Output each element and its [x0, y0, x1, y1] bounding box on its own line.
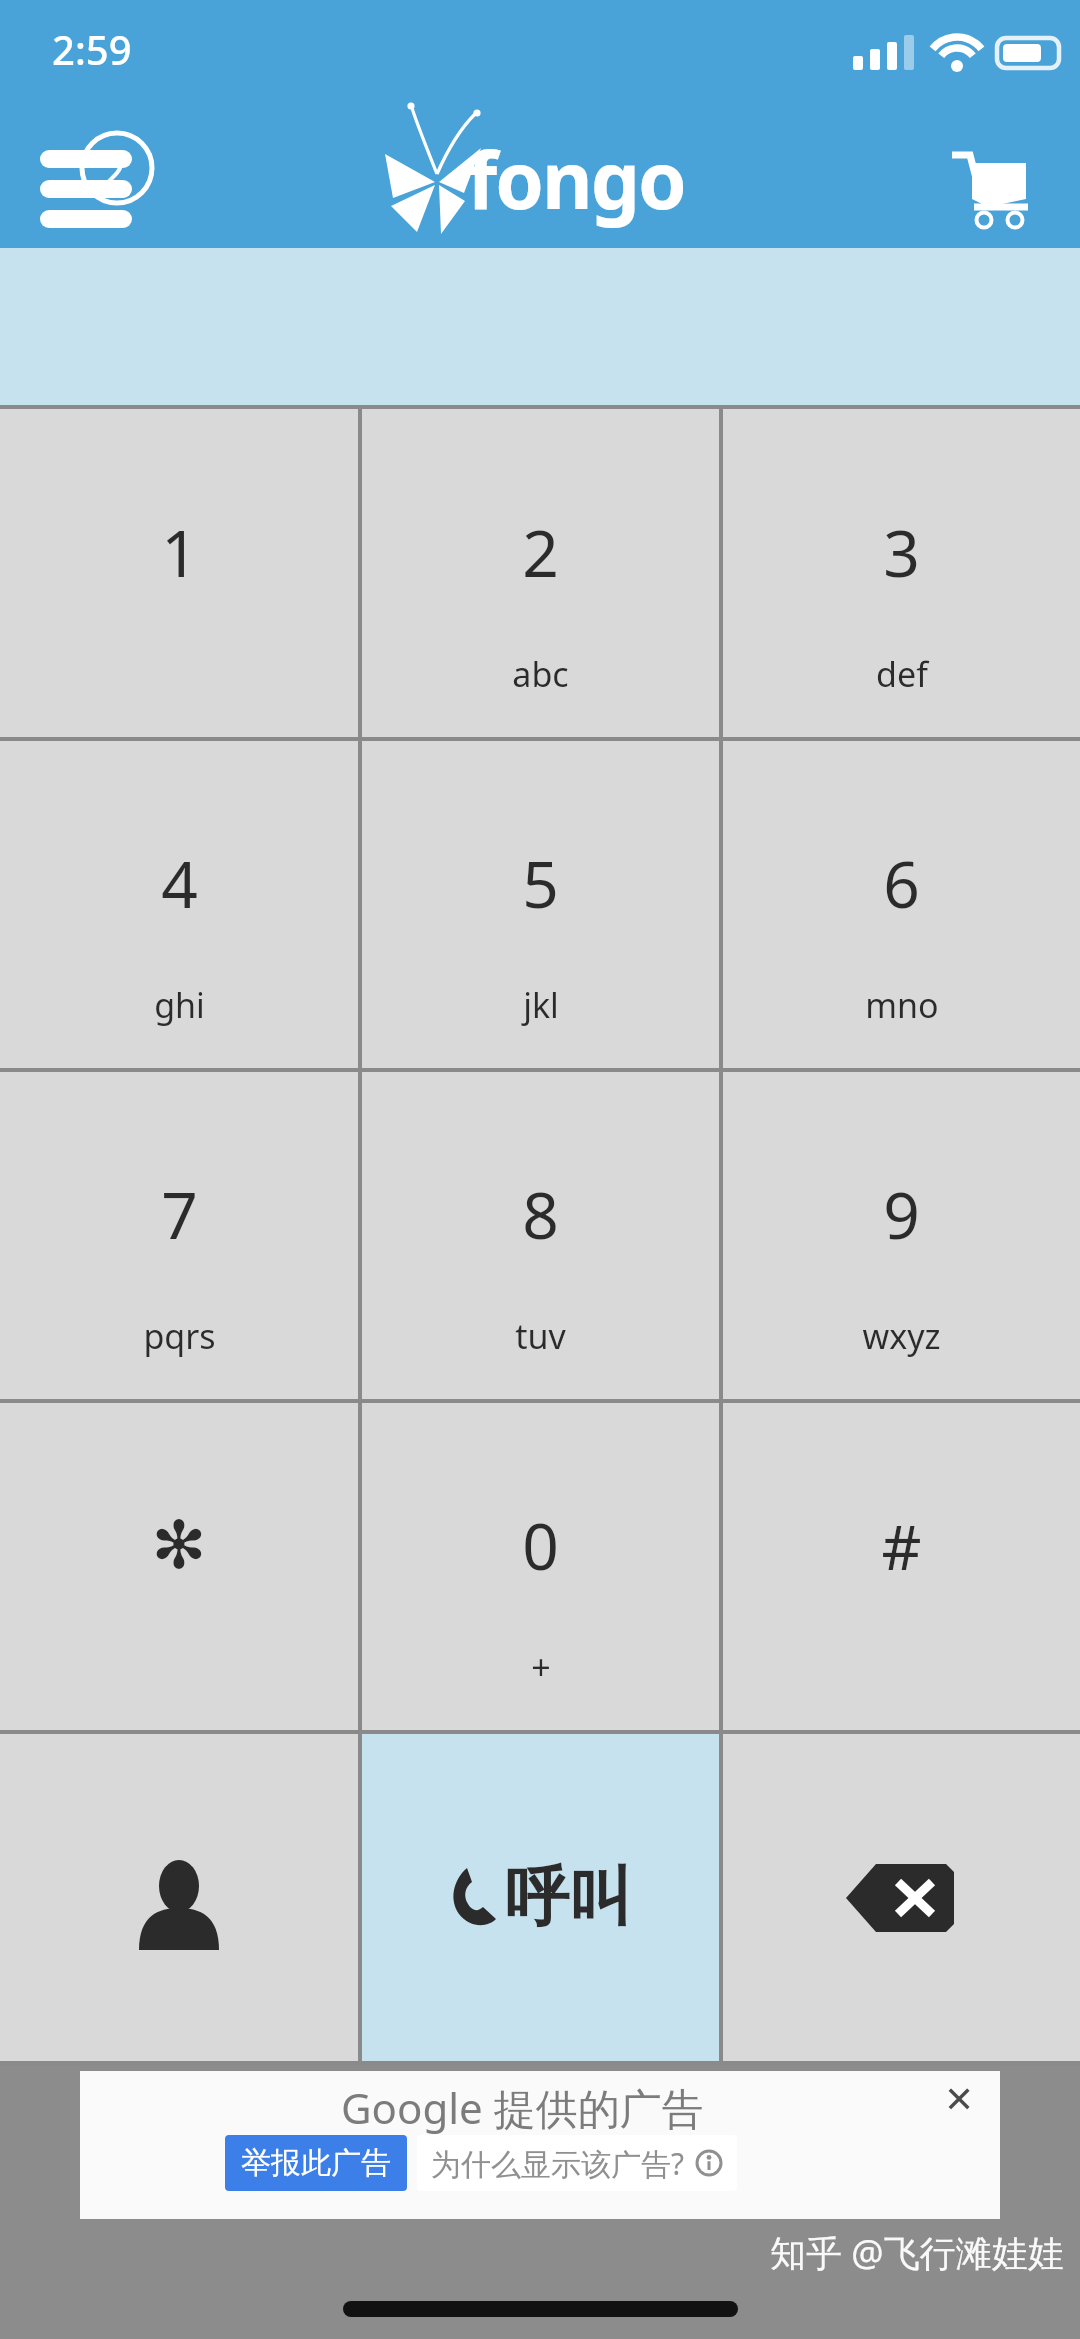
staticText: 0 [522, 1502, 559, 1589]
staticText: tuv [515, 1313, 566, 1359]
button[interactable]: 2 [362, 409, 719, 737]
staticText: 举报此广告 [241, 2144, 391, 2182]
staticText: # [881, 1504, 922, 1588]
staticText: 为什么显示该广告? [431, 2143, 685, 2184]
staticText: jkl [523, 982, 559, 1028]
staticText: mno [865, 982, 939, 1028]
button[interactable]: 1 [0, 409, 358, 737]
button[interactable]: Contacts [0, 1734, 358, 2061]
button[interactable]: Cart [935, 138, 1047, 240]
staticText: 9 [883, 1171, 920, 1258]
button[interactable]: Fongo [385, 114, 695, 226]
staticText: def [876, 651, 928, 697]
staticText: ✕ [944, 2079, 975, 2121]
button[interactable]: # [723, 1403, 1080, 1730]
button[interactable]: 4 [0, 741, 358, 1068]
button[interactable]: 0 [362, 1403, 719, 1730]
button[interactable]: 3 [723, 409, 1080, 737]
button[interactable]: 7 [0, 1072, 358, 1399]
staticText: ghi [154, 982, 205, 1028]
staticText: 8 [522, 1171, 559, 1258]
staticText: 呼叫 [505, 1857, 633, 1938]
staticText: 1 [161, 509, 198, 596]
button[interactable]: 9 [723, 1072, 1080, 1399]
button[interactable]: 呼叫 [362, 1734, 719, 2061]
staticText: 3 [883, 509, 920, 596]
staticText: 知乎 @飞行滩娃娃 [770, 2228, 1064, 2277]
staticText: pqrs [143, 1313, 216, 1359]
staticText: 2 [522, 509, 559, 596]
button[interactable]: Backspace [723, 1734, 1080, 2061]
staticText: wxyz [862, 1313, 941, 1359]
staticText: Google 提供的广告 [341, 2079, 704, 2136]
button[interactable]: 5 [362, 741, 719, 1068]
button[interactable]: 举报此广告 [225, 2135, 407, 2191]
button[interactable]: 为什么显示该广告? [417, 2135, 737, 2191]
staticText: fongo [467, 126, 685, 232]
staticText: 2:59 [52, 22, 132, 76]
button[interactable]: ✻ [0, 1403, 358, 1730]
button[interactable]: 6 [723, 741, 1080, 1068]
staticText: 4 [161, 840, 198, 927]
staticText: 2 [100, 140, 127, 203]
button[interactable]: Menu, 2 notifications [22, 118, 162, 233]
staticText: 6 [883, 840, 920, 927]
staticText: 5 [522, 840, 559, 927]
button[interactable]: 8 [362, 1072, 719, 1399]
staticText: + [531, 1644, 551, 1690]
staticText: 7 [161, 1171, 198, 1258]
staticText: ✻ [151, 1507, 207, 1584]
button[interactable]: Close ad [934, 2075, 984, 2125]
staticText: abc [512, 651, 569, 697]
